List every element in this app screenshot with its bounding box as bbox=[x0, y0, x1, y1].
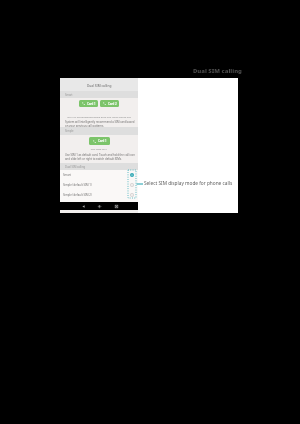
button[interactable]: Home bbox=[96, 202, 103, 210]
button[interactable]: Card 1 bbox=[79, 100, 98, 107]
staticText: Simple bbox=[65, 129, 74, 133]
staticText: Select SIM display mode for phone calls bbox=[144, 180, 233, 186]
staticText: Simple (default SIM 1) bbox=[63, 183, 92, 187]
button[interactable]: Simple (default SIM 2) bbox=[60, 190, 138, 200]
staticText: Use SIM 1 as default card. Touch and hol… bbox=[65, 153, 135, 161]
staticText: Card 1 bbox=[98, 139, 107, 143]
button[interactable]: Smart bbox=[60, 170, 138, 180]
staticText: Only show SIM 1 bbox=[60, 148, 138, 151]
button[interactable]: Simple (default SIM 1) bbox=[60, 180, 138, 190]
staticText: Simple (default SIM 2) bbox=[63, 193, 92, 197]
staticText: Dual SIM calling bbox=[193, 67, 242, 75]
staticText: SIM X is recommended while both SIM card… bbox=[60, 115, 138, 118]
button[interactable]: Recent apps bbox=[113, 202, 120, 210]
staticText: Dual SIM calling bbox=[87, 84, 112, 88]
staticText: System will intelligently recommend a SI… bbox=[65, 120, 135, 128]
staticText: Smart bbox=[63, 173, 71, 177]
staticText: Card 1 bbox=[87, 102, 96, 106]
button[interactable]: Card 1 bbox=[89, 137, 110, 145]
button[interactable]: Back bbox=[80, 202, 87, 210]
staticText: Card 2 bbox=[108, 102, 117, 106]
button[interactable]: Card 2 bbox=[100, 100, 119, 107]
staticText: Dual SIM calling bbox=[65, 165, 86, 169]
staticText: Smart bbox=[65, 93, 73, 97]
